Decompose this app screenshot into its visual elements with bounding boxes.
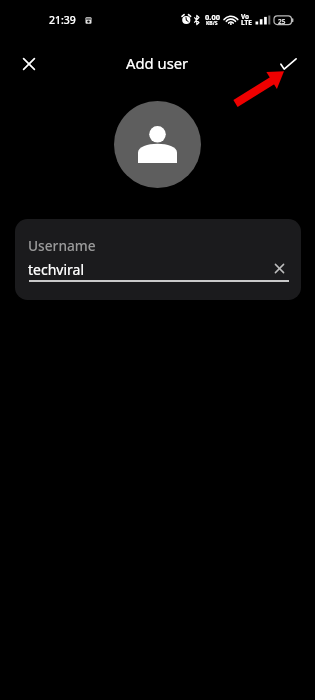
staticText: 25 xyxy=(278,17,286,26)
staticText: Add user xyxy=(126,53,189,73)
button[interactable]: Done xyxy=(270,45,307,82)
staticText: LTE xyxy=(241,18,252,27)
button[interactable]: Profile photo xyxy=(114,101,201,188)
button[interactable]: Clear text xyxy=(269,258,289,278)
staticText: 0.00 xyxy=(205,12,220,22)
staticText: 21:39 xyxy=(49,13,76,27)
staticText: Vo xyxy=(241,12,250,21)
button[interactable]: Close xyxy=(10,45,47,82)
button[interactable]: Username xyxy=(15,219,301,300)
staticText: Username xyxy=(28,236,96,255)
staticText: techviral xyxy=(28,260,85,279)
staticText: KB/S xyxy=(206,20,218,27)
